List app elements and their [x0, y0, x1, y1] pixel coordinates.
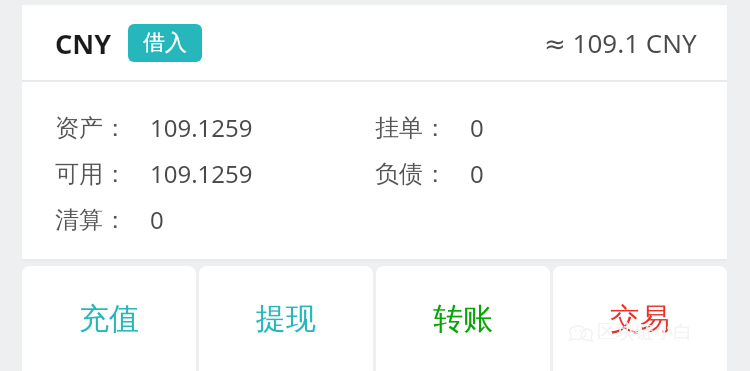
button[interactable]: CNY	[22, 5, 727, 80]
button[interactable]: 交易	[553, 266, 727, 371]
button[interactable]: 借入	[128, 24, 202, 62]
staticText: 资产：	[55, 113, 150, 143]
button[interactable]: 提现	[199, 266, 373, 371]
staticText: 0	[470, 157, 484, 190]
staticText: 0	[150, 203, 164, 236]
staticText: 可用：	[55, 159, 150, 189]
staticText: 0	[470, 111, 484, 144]
button[interactable]: 充值	[22, 266, 196, 371]
staticText: 挂单：	[375, 113, 470, 143]
staticText: 提现	[256, 300, 316, 338]
button[interactable]: 转账	[376, 266, 550, 371]
staticText: 清算：	[55, 205, 150, 235]
staticText: 交易	[610, 300, 670, 338]
staticText: 109.1259	[150, 157, 253, 190]
staticText: 109.1259	[150, 111, 253, 144]
staticText: 转账	[433, 300, 493, 338]
staticText: 负债：	[375, 159, 470, 189]
staticText: 借入	[143, 29, 187, 57]
staticText: CNY	[55, 25, 112, 62]
staticText: ≈ 109.1 CNY	[544, 25, 697, 60]
staticText: 充值	[79, 300, 139, 338]
staticText: 区块链小白	[597, 320, 692, 344]
